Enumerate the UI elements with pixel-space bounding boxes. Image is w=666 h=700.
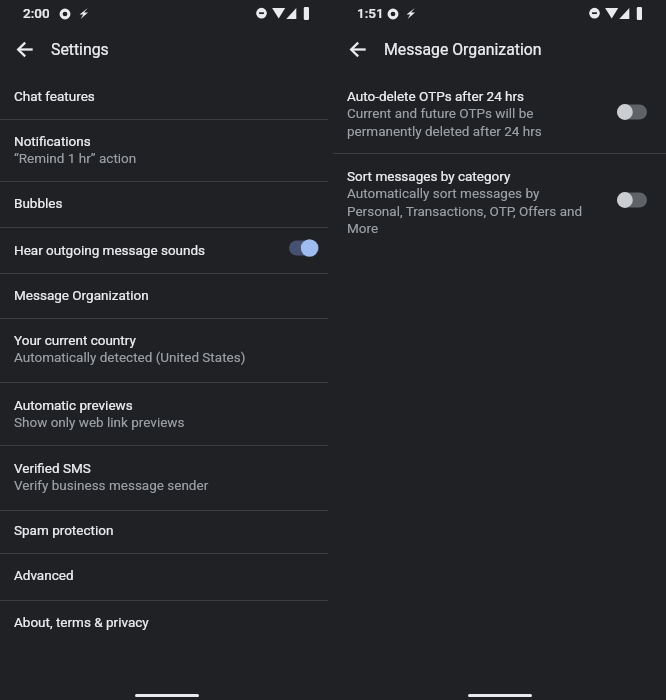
staticText: Your current country: [14, 332, 136, 348]
staticText: Personal, Transactions, OTP, Offers and: [347, 203, 583, 219]
staticText: Bubbles: [14, 195, 63, 211]
button[interactable]: Automatic previews: [0, 383, 333, 445]
button[interactable]: Message Organization: [0, 274, 333, 318]
staticText: Message Organization: [384, 40, 542, 59]
button[interactable]: Off: [612, 185, 652, 215]
button[interactable]: On: [284, 233, 324, 263]
button[interactable]: Hear outgoing message sounds: [0, 228, 333, 273]
staticText: Show only web link previews: [14, 414, 185, 430]
staticText: 2:00: [23, 5, 50, 21]
staticText: 1:51: [357, 5, 384, 21]
staticText: Notifications: [14, 133, 91, 149]
button[interactable]: Sort messages by category: [333, 154, 666, 249]
staticText: Automatically detected (United States): [14, 349, 246, 365]
button[interactable]: About, terms & privacy: [0, 601, 333, 646]
staticText: Settings: [51, 40, 109, 59]
staticText: More: [347, 220, 379, 236]
button[interactable]: Spam protection: [0, 511, 333, 553]
button[interactable]: Chat features: [0, 72, 333, 119]
staticText: Message Organization: [14, 287, 149, 303]
button[interactable]: Auto-delete OTPs after 24 hrs: [333, 72, 666, 153]
staticText: Chat features: [14, 88, 95, 104]
staticText: Advanced: [14, 567, 74, 583]
staticText: Automatically sort messages by: [347, 185, 540, 201]
button[interactable]: Verified SMS: [0, 446, 333, 510]
button[interactable]: Off: [612, 97, 652, 127]
button[interactable]: Navigate up: [9, 33, 41, 65]
staticText: Automatic previews: [14, 397, 133, 413]
button[interactable]: Navigate up: [342, 33, 374, 65]
staticText: Current and future OTPs will be: [347, 105, 534, 121]
staticText: Sort messages by category: [347, 168, 511, 184]
staticText: permanently deleted after 24 hrs: [347, 123, 542, 139]
staticText: Spam protection: [14, 522, 114, 538]
button[interactable]: Your current country: [0, 319, 333, 382]
staticText: Auto-delete OTPs after 24 hrs: [347, 88, 525, 104]
staticText: Verify business message sender: [14, 477, 209, 493]
staticText: About, terms & privacy: [14, 614, 149, 630]
staticText: Verified SMS: [14, 460, 91, 476]
staticText: Hear outgoing message sounds: [14, 242, 206, 258]
button[interactable]: Bubbles: [0, 182, 333, 227]
button[interactable]: Advanced: [0, 554, 333, 600]
button[interactable]: Notifications: [0, 120, 333, 181]
staticText: “Remind 1 hr” action: [14, 150, 137, 166]
